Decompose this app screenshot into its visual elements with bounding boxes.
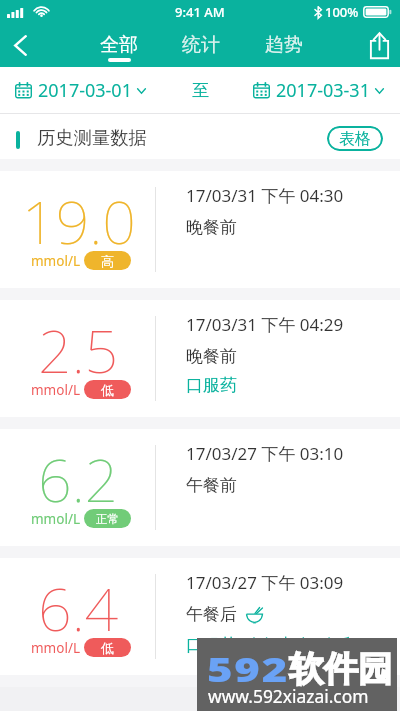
staticText: 高	[101, 253, 114, 269]
staticText: mmol/L	[31, 252, 80, 270]
staticText: 口服药	[186, 375, 237, 396]
button[interactable]: 2017-03-01	[15, 78, 146, 103]
staticText: 6.4	[38, 568, 119, 648]
button[interactable]: 2017-03-31	[253, 78, 384, 103]
staticText: 低	[101, 640, 114, 656]
staticText: 至	[192, 80, 209, 101]
staticText: 全部	[100, 33, 138, 57]
staticText: 晚餐前	[186, 217, 237, 238]
button[interactable]: 6.2	[0, 429, 400, 546]
staticText: mmol/L	[31, 639, 80, 657]
button[interactable]: 2.5	[0, 300, 400, 417]
staticText: 2.5	[38, 310, 119, 390]
staticText: 6.2	[38, 439, 119, 519]
staticText: 592	[207, 647, 290, 692]
staticText: 历史测量数据	[37, 126, 147, 149]
staticText: 统计	[182, 33, 220, 57]
staticText: 正常	[96, 512, 119, 526]
button[interactable]: 表格	[327, 126, 383, 151]
staticText: 趋势	[265, 33, 303, 57]
staticText: mmol/L	[31, 381, 80, 399]
staticText: 17/03/31 下午 04:30	[186, 184, 344, 207]
button[interactable]: Share	[356, 24, 400, 67]
staticText: 低	[101, 382, 114, 398]
staticText: 午餐后	[186, 604, 237, 625]
staticText: 口服药/胰岛素/运动后	[186, 633, 352, 656]
button[interactable]: Back	[0, 24, 44, 67]
button[interactable]: 19.0	[0, 171, 400, 288]
button[interactable]: 统计	[171, 24, 231, 67]
staticText: 100%	[325, 3, 359, 21]
staticText: 19.0	[22, 181, 136, 261]
staticText: 午餐前	[186, 475, 237, 496]
staticText: 17/03/31 下午 04:29	[186, 313, 344, 336]
staticText: 9:41 AM	[175, 3, 225, 21]
staticText: 软件园	[289, 648, 393, 691]
staticText: 17/03/27 下午 03:10	[186, 442, 344, 465]
button[interactable]: 趋势	[254, 24, 314, 67]
button[interactable]: 全部	[89, 24, 149, 67]
button[interactable]: 6.4	[0, 558, 400, 675]
staticText: 晚餐前	[186, 346, 237, 367]
staticText: 2017-03-31	[276, 78, 370, 103]
staticText: 表格	[339, 129, 371, 149]
staticText: mmol/L	[31, 510, 80, 528]
staticText: 2017-03-01	[38, 78, 132, 103]
staticText: www.592xiazai.com	[208, 684, 369, 708]
staticText: 17/03/27 下午 03:09	[186, 571, 344, 594]
